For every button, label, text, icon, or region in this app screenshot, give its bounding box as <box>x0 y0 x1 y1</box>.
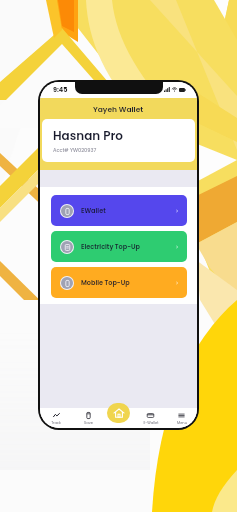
staticText: E-Wallet <box>143 420 159 425</box>
staticText: Mobile Top-Up <box>81 278 130 287</box>
button[interactable]: Mobile Top-Up <box>51 267 187 298</box>
button[interactable]: Track <box>40 409 72 428</box>
staticText: Track <box>51 420 61 425</box>
staticText: Hasnan Pro <box>53 127 123 144</box>
staticText: Save <box>84 420 93 425</box>
staticText: EWallet <box>81 206 106 215</box>
staticText: Menu <box>177 420 187 425</box>
button[interactable]: Menu <box>166 409 197 428</box>
button[interactable]: Home <box>107 403 130 423</box>
button[interactable]: E-Wallet <box>135 409 166 428</box>
button[interactable]: EWallet <box>51 195 187 226</box>
button[interactable]: Save <box>72 409 104 428</box>
staticText: Electricity Top-Up <box>81 242 140 251</box>
staticText: 9:45 <box>53 85 68 94</box>
staticText: Yayeh Wallet <box>93 104 144 114</box>
staticText: Acct# YW020937 <box>53 147 97 154</box>
button[interactable]: Electricity Top-Up <box>51 231 187 262</box>
